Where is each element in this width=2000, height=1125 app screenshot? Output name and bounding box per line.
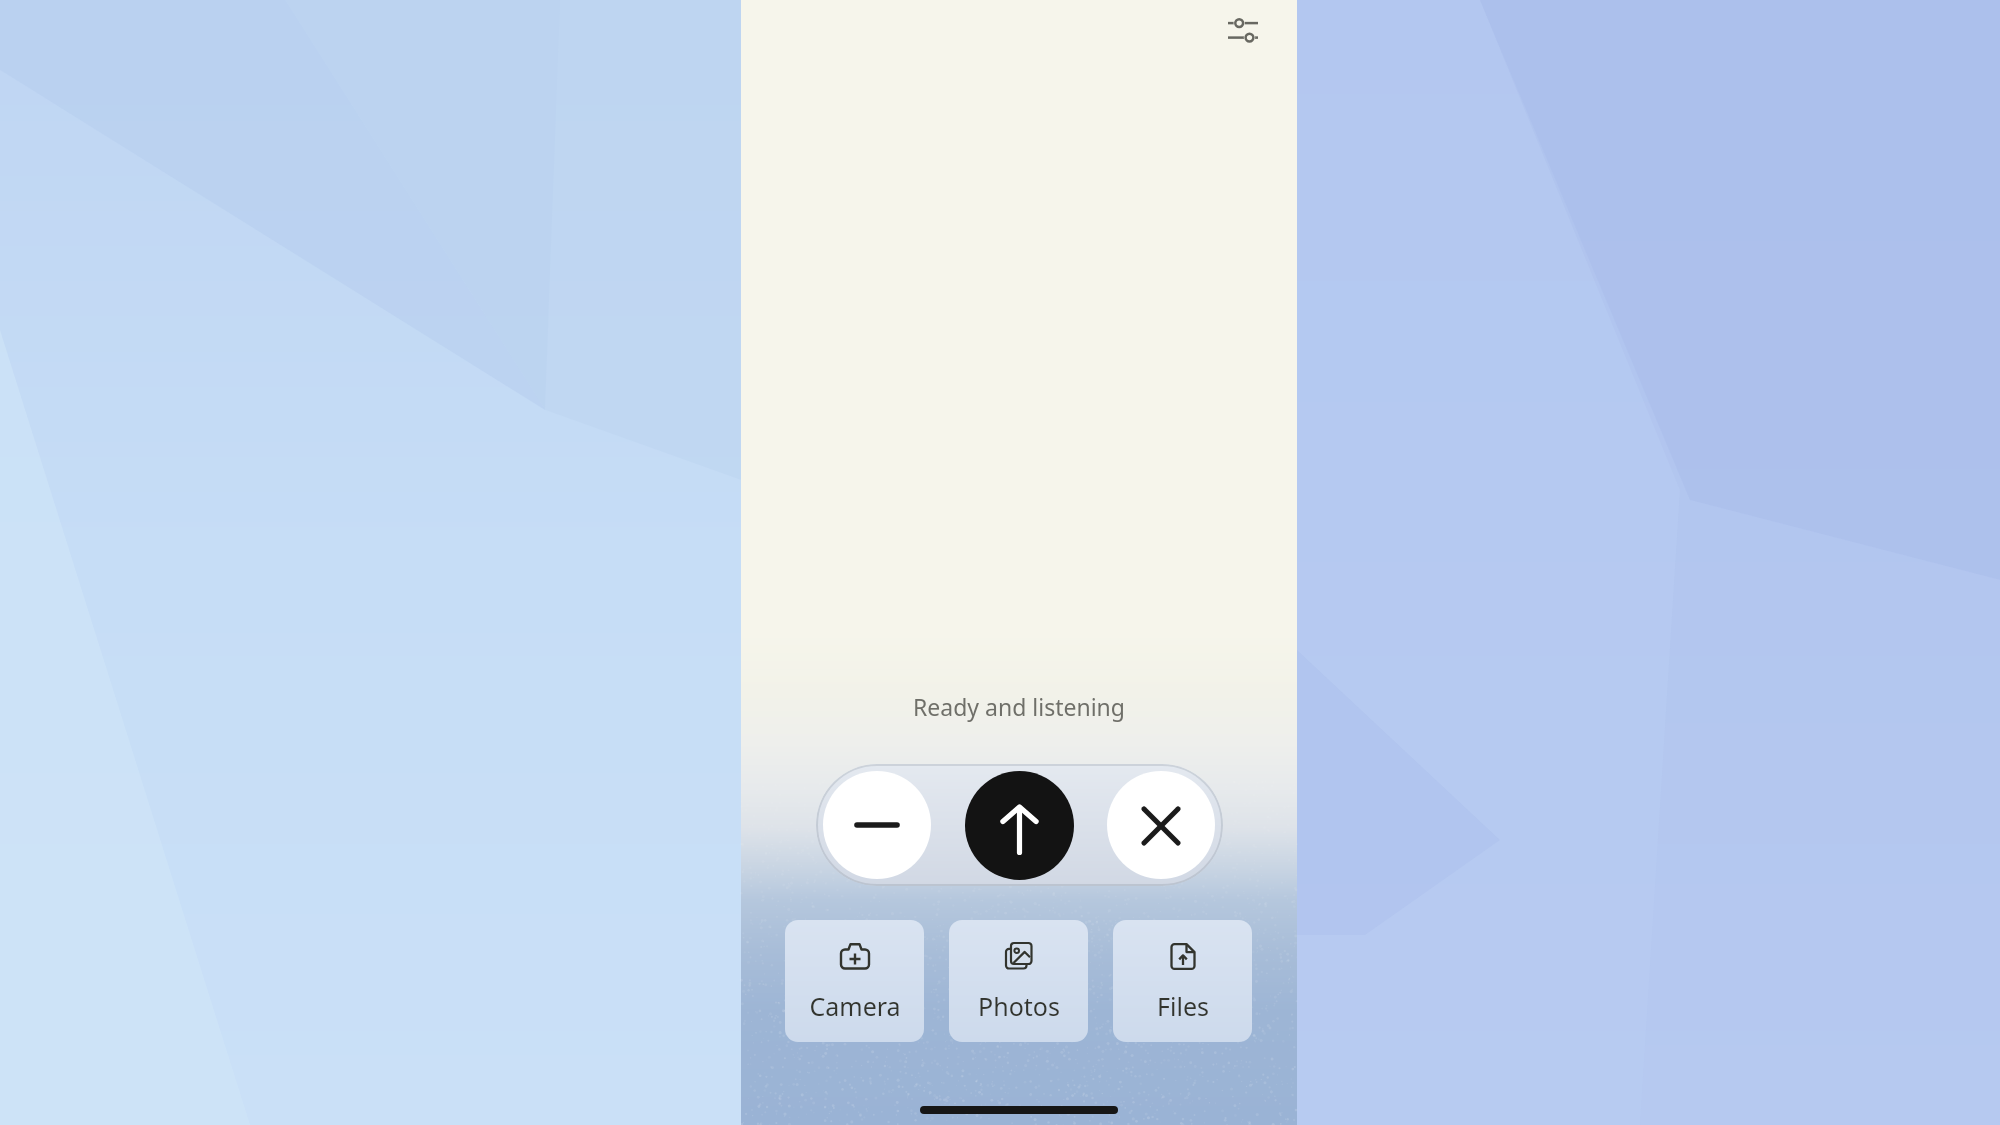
button[interactable]: Camera [785,920,924,1042]
button[interactable]: Files [1113,920,1252,1042]
button[interactable]: Photos [949,920,1088,1042]
staticText: Files [1157,989,1209,1023]
staticText: Camera [809,989,901,1023]
staticText: Photos [978,989,1060,1023]
staticText: Ready and listening [741,691,1297,722]
button[interactable] [1214,2,1266,54]
button[interactable] [965,771,1074,880]
button[interactable] [1107,771,1215,879]
button[interactable] [823,771,931,879]
